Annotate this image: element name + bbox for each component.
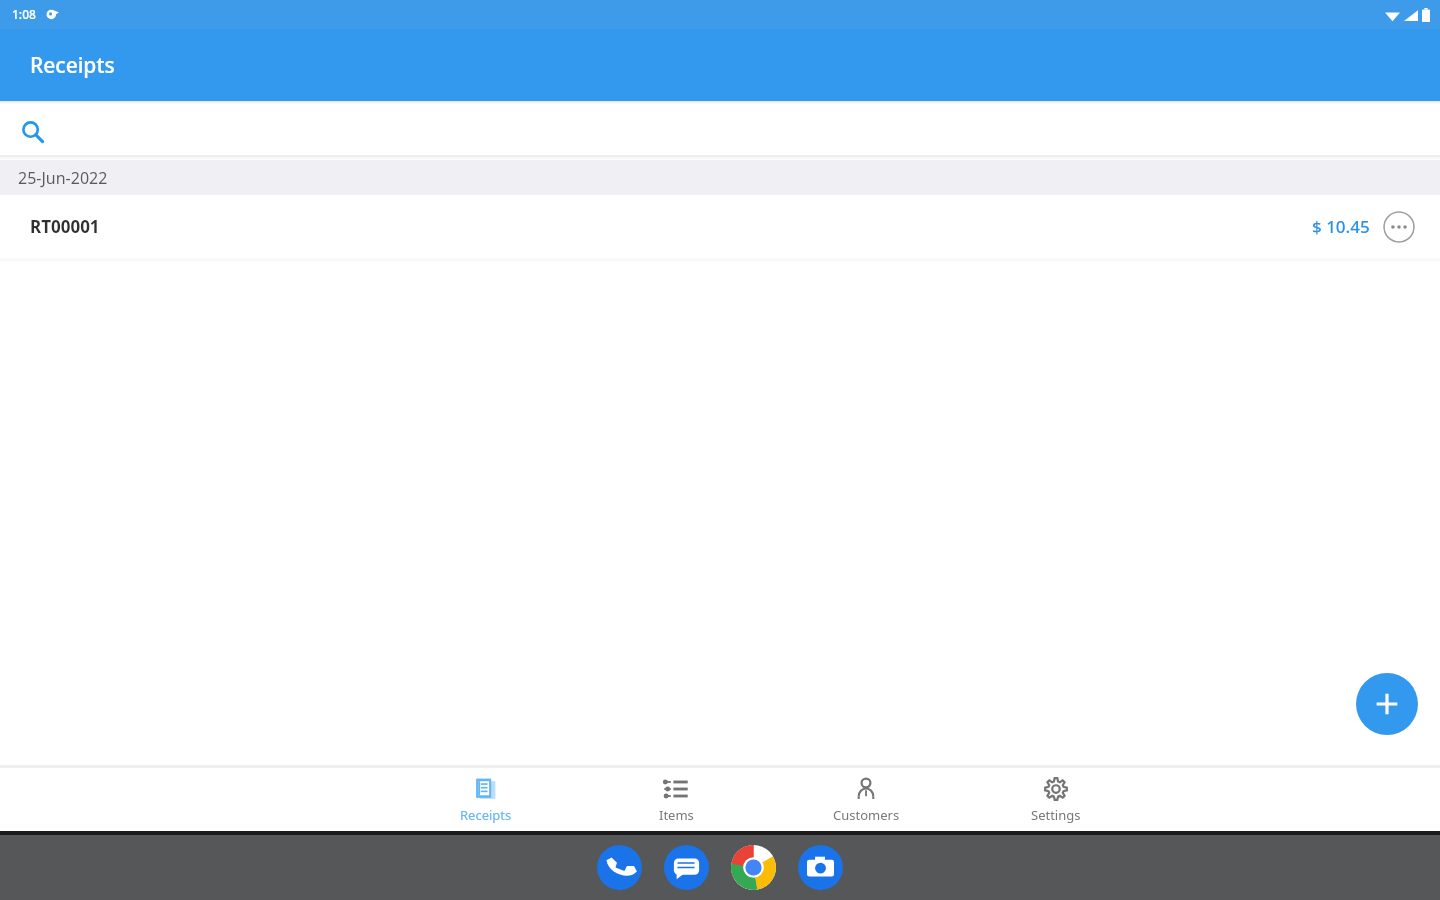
button[interactable]: Customers	[771, 776, 961, 824]
other: Search	[21, 120, 45, 144]
staticText: Settings	[1031, 806, 1081, 824]
button[interactable]: Settings	[961, 776, 1151, 824]
button[interactable]: Receipts	[391, 776, 581, 824]
staticText: Receipts	[30, 51, 115, 80]
button[interactable]: Camera	[798, 845, 843, 890]
staticText: $ 10.45	[1312, 215, 1370, 238]
button[interactable]: More options	[1383, 211, 1415, 243]
staticText: 25-Jun-2022	[18, 167, 108, 189]
staticText: 1:08	[12, 6, 36, 22]
button[interactable]: Items	[581, 776, 771, 824]
button[interactable]: Search	[6, 112, 1434, 152]
button[interactable]: Phone	[597, 845, 642, 890]
staticText: RT00001	[30, 215, 100, 238]
button[interactable]: Chrome	[731, 845, 776, 890]
button[interactable]: RT00001	[0, 195, 1440, 258]
button[interactable]: Add receipt	[1356, 673, 1418, 735]
button[interactable]: Messages	[664, 845, 709, 890]
staticText: Receipts	[460, 806, 512, 824]
staticText: Items	[659, 806, 694, 824]
staticText: Customers	[833, 806, 900, 824]
